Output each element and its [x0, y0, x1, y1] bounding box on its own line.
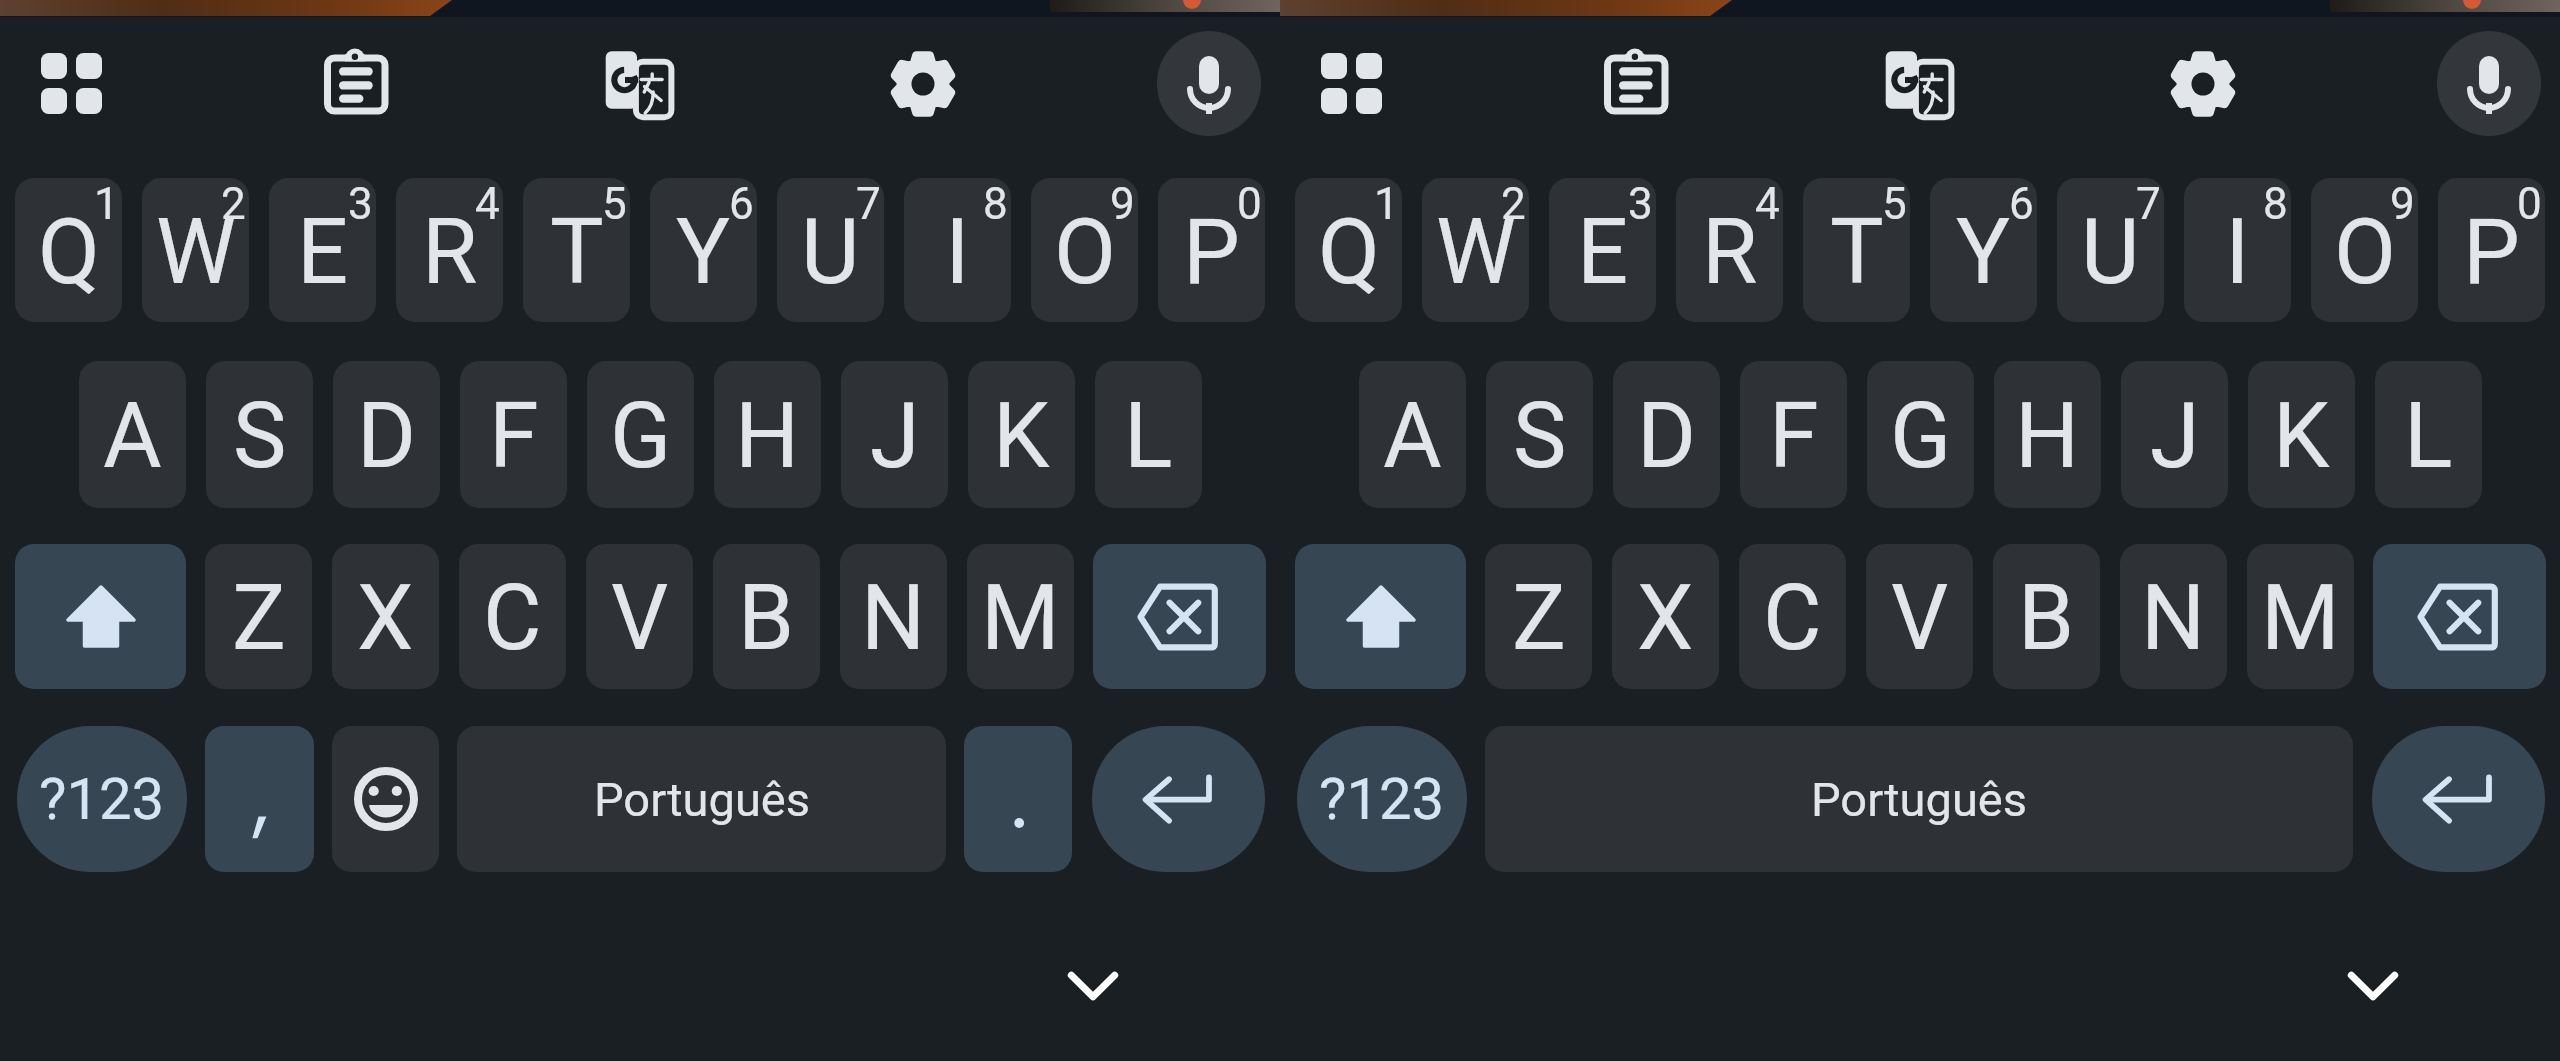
button[interactable]: Voice input — [1157, 31, 1261, 136]
button[interactable]: Keyboard modes — [41, 53, 102, 114]
button[interactable]: Português — [1485, 726, 2353, 872]
button[interactable]: C — [459, 544, 566, 689]
button[interactable]: Clipboard — [1605, 44, 1667, 118]
button[interactable]: W — [1422, 178, 1529, 322]
button[interactable]: S — [1486, 361, 1593, 508]
button[interactable]: Hide keyboard — [2323, 936, 2423, 1036]
button[interactable]: I — [2184, 178, 2291, 322]
button[interactable]: ?123 — [1297, 726, 1467, 872]
button[interactable]: B — [713, 544, 820, 689]
staticText: Y — [1956, 200, 2011, 305]
staticText: O — [1054, 200, 1116, 305]
staticText: Y — [676, 200, 731, 305]
button[interactable]: P — [2438, 178, 2545, 322]
button[interactable]: Z — [1485, 544, 1592, 689]
button[interactable]: M — [2247, 544, 2354, 689]
staticText: V — [1891, 566, 1949, 671]
button[interactable]: W — [142, 178, 249, 322]
staticText: B — [738, 566, 795, 671]
staticText: J — [870, 384, 920, 489]
button[interactable]: G — [1867, 361, 1974, 508]
button[interactable]: R — [1676, 178, 1783, 322]
button[interactable]: F — [460, 361, 567, 508]
button[interactable]: A — [79, 361, 186, 508]
button[interactable] — [1093, 544, 1266, 689]
button[interactable]: L — [1095, 361, 1202, 508]
button[interactable]: N — [840, 544, 947, 689]
button[interactable]: L — [2375, 361, 2482, 508]
button[interactable]: I — [904, 178, 1011, 322]
button[interactable]: Hide keyboard — [1043, 936, 1143, 1036]
staticText: I — [945, 200, 970, 305]
button[interactable]: Settings — [888, 46, 960, 122]
staticText: Z — [232, 566, 286, 671]
button[interactable]: Y — [650, 178, 757, 322]
button[interactable]: V — [1866, 544, 1973, 689]
button[interactable]: Português — [457, 726, 946, 872]
button[interactable]: Y — [1930, 178, 2037, 322]
button[interactable]: Translate — [1884, 48, 1956, 122]
button[interactable]: G — [587, 361, 694, 508]
button[interactable]: Settings — [2168, 46, 2240, 122]
button[interactable]: B — [1993, 544, 2100, 689]
button[interactable] — [964, 726, 1072, 872]
button[interactable] — [2372, 726, 2545, 872]
button[interactable]: U — [777, 178, 884, 322]
button[interactable]: E — [1549, 178, 1656, 322]
staticText: ?123 — [1319, 765, 1445, 833]
staticText: 5 — [1882, 178, 1907, 230]
button[interactable]: F — [1740, 361, 1847, 508]
button[interactable]: ?123 — [17, 726, 187, 872]
staticText: H — [2015, 384, 2080, 489]
staticText: I — [2225, 200, 2250, 305]
button[interactable] — [205, 726, 314, 872]
button[interactable]: Clipboard — [325, 44, 387, 118]
button[interactable]: T — [523, 178, 630, 322]
button[interactable]: A — [1359, 361, 1466, 508]
button[interactable]: Q — [1295, 178, 1402, 322]
button[interactable]: X — [1612, 544, 1719, 689]
button[interactable]: S — [206, 361, 313, 508]
button[interactable]: P — [1158, 178, 1265, 322]
button[interactable] — [332, 726, 439, 872]
button[interactable]: E — [269, 178, 376, 322]
button[interactable]: X — [332, 544, 439, 689]
staticText: O — [2334, 200, 2396, 305]
staticText: H — [735, 384, 800, 489]
button[interactable]: V — [586, 544, 693, 689]
button[interactable]: J — [841, 361, 948, 508]
button[interactable]: H — [1994, 361, 2101, 508]
button[interactable]: C — [1739, 544, 1846, 689]
button[interactable] — [1295, 544, 1466, 689]
button[interactable]: M — [967, 544, 1074, 689]
button[interactable]: Voice input — [2437, 31, 2541, 136]
button[interactable]: U — [2057, 178, 2164, 322]
button[interactable] — [1092, 726, 1265, 872]
staticText: 6 — [729, 178, 754, 230]
button[interactable]: K — [2248, 361, 2355, 508]
staticText: G — [1890, 384, 1952, 489]
button[interactable]: D — [333, 361, 440, 508]
button[interactable]: D — [1613, 361, 1720, 508]
button[interactable] — [15, 544, 186, 689]
button[interactable]: J — [2121, 361, 2228, 508]
staticText: L — [2404, 384, 2453, 489]
button[interactable]: O — [2311, 178, 2418, 322]
staticText: D — [1637, 384, 1697, 489]
button[interactable]: T — [1803, 178, 1910, 322]
button[interactable]: Z — [205, 544, 312, 689]
staticText: E — [297, 200, 349, 305]
button[interactable]: Translate — [604, 48, 676, 122]
button[interactable]: O — [1031, 178, 1138, 322]
button[interactable]: Q — [15, 178, 122, 322]
button[interactable]: Keyboard modes — [1321, 53, 1382, 114]
button[interactable]: K — [968, 361, 1075, 508]
button[interactable]: R — [396, 178, 503, 322]
button[interactable]: N — [2120, 544, 2227, 689]
button[interactable]: H — [714, 361, 821, 508]
staticText: U — [2081, 200, 2140, 305]
staticText: C — [1763, 566, 1822, 671]
button[interactable] — [2373, 544, 2546, 689]
staticText: Português — [594, 772, 810, 827]
staticText: 7 — [2136, 178, 2161, 230]
